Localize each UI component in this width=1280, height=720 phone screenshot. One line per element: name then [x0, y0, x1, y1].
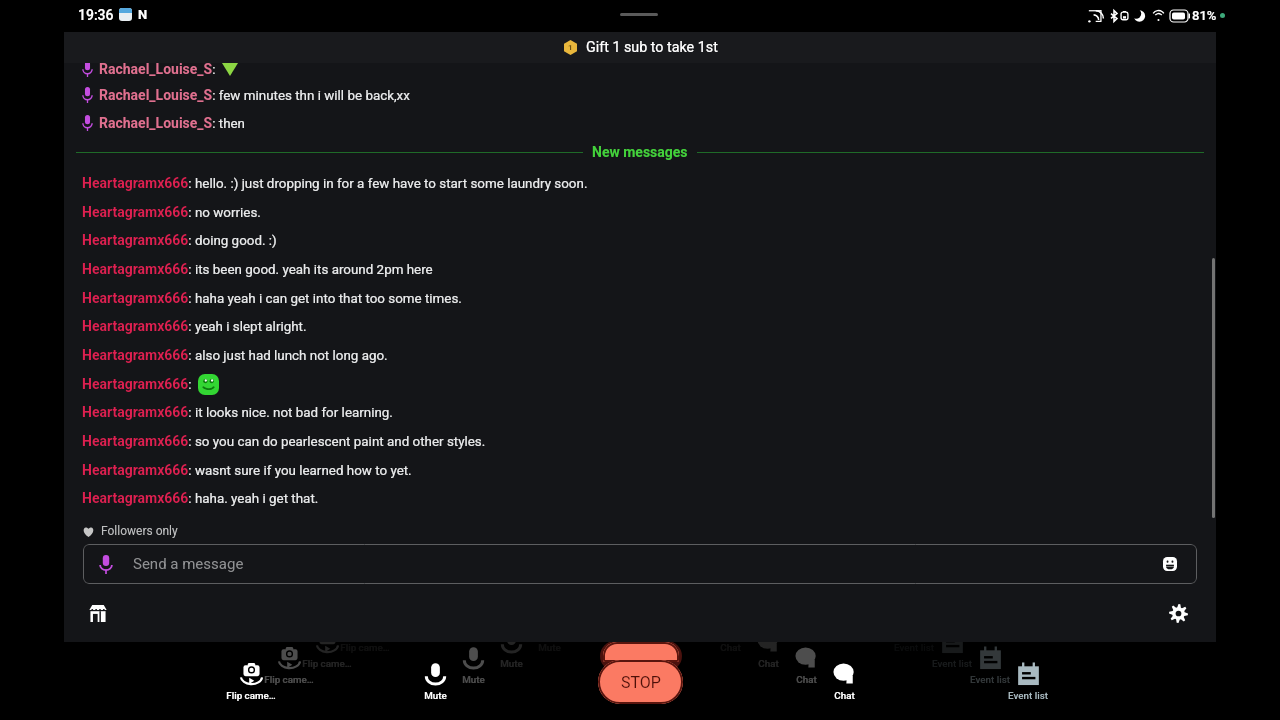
button[interactable]: Heartagramx666: no worries. — [82, 200, 1216, 224]
button[interactable]: Flip came… — [209, 662, 293, 704]
staticText: Heartagramx666: haha. yeah i get that. — [82, 490, 319, 506]
button[interactable]: Heartagramx666: hello. :) just dropping … — [82, 171, 1216, 195]
button[interactable]: Event list — [986, 662, 1070, 704]
staticText: Rachael_Louise_S: then — [99, 115, 246, 131]
staticText: Mute — [462, 674, 485, 685]
staticText: Mute — [538, 642, 561, 653]
button[interactable]: Heartagramx666: — [82, 372, 1216, 396]
button[interactable]: Rachael_Louise_S: — [82, 63, 1216, 81]
staticText: Chat — [758, 658, 779, 669]
staticText: STOP — [621, 673, 661, 692]
button[interactable]: Heartagramx666: haha. yeah i get that. — [82, 486, 1216, 510]
staticText: Rachael_Louise_S: — [99, 63, 216, 77]
button[interactable]: Heartagramx666: haha yeah i can get into… — [82, 286, 1216, 310]
staticText: Chat — [720, 642, 741, 653]
staticText: Heartagramx666: so you can do pearlescen… — [82, 433, 486, 449]
staticText: Flip came… — [226, 690, 276, 701]
button[interactable]: Rachael_Louise_S: few minutes thn i will… — [82, 83, 1216, 107]
button[interactable]: Emoji — [1157, 551, 1183, 577]
staticText: Event list — [1008, 690, 1048, 701]
button[interactable]: Settings — [1163, 598, 1193, 628]
staticText: Mute — [424, 690, 447, 701]
button[interactable]: Send a message — [83, 544, 1197, 584]
staticText: Heartagramx666: wasnt sure if you learne… — [82, 462, 412, 478]
staticText: Heartagramx666: hello. :) just dropping … — [82, 175, 588, 191]
staticText: Followers only — [101, 524, 178, 538]
staticText: Heartagramx666: its been good. yeah its … — [82, 261, 433, 277]
staticText: Heartagramx666: doing good. :) — [82, 232, 277, 248]
staticText: 1 — [568, 43, 573, 52]
staticText: Flip came… — [302, 658, 352, 669]
staticText: Heartagramx666: haha yeah i can get into… — [82, 290, 462, 306]
staticText: Mute — [500, 658, 523, 669]
staticText: Rachael_Louise_S: few minutes thn i will… — [99, 87, 410, 103]
button[interactable]: Heartagramx666: also just had lunch not … — [82, 343, 1216, 367]
button[interactable]: 1 — [64, 32, 1216, 63]
staticText: New messages — [592, 144, 688, 160]
staticText: Flip came… — [264, 674, 314, 685]
staticText: Heartagramx666: — [82, 376, 192, 392]
staticText: 19:36 — [78, 7, 114, 23]
staticText: Send a message — [133, 555, 244, 573]
button[interactable]: Heartagramx666: doing good. :) — [82, 228, 1216, 252]
staticText: Heartagramx666: no worries. — [82, 204, 261, 220]
button[interactable]: Mute — [393, 662, 477, 704]
staticText: Heartagramx666: yeah i slept alright. — [82, 318, 307, 334]
button[interactable]: STOP — [598, 660, 683, 704]
staticText: N — [138, 7, 148, 22]
button[interactable]: Heartagramx666: so you can do pearlescen… — [82, 429, 1216, 453]
staticText: Flip came… — [340, 642, 390, 653]
staticText: Event list — [932, 658, 972, 669]
staticText: Gift 1 sub to take 1st — [586, 39, 718, 56]
staticText: Event list — [894, 642, 934, 653]
button[interactable]: Rachael_Louise_S: then — [82, 111, 1216, 135]
staticText: Heartagramx666: also just had lunch not … — [82, 347, 388, 363]
staticText: Event list — [970, 674, 1010, 685]
staticText: Chat — [796, 674, 817, 685]
button[interactable]: Heartagramx666: yeah i slept alright. — [82, 314, 1216, 338]
button[interactable]: Heartagramx666: its been good. yeah its … — [82, 257, 1216, 281]
staticText: Heartagramx666: it looks nice. not bad f… — [82, 404, 393, 420]
button[interactable]: Heartagramx666: wasnt sure if you learne… — [82, 458, 1216, 482]
staticText: Chat — [834, 690, 855, 701]
button[interactable]: Chat — [802, 662, 886, 704]
button[interactable]: Heartagramx666: it looks nice. not bad f… — [82, 400, 1216, 424]
staticText: 81% — [1192, 8, 1217, 23]
button[interactable]: Store — [83, 598, 113, 628]
